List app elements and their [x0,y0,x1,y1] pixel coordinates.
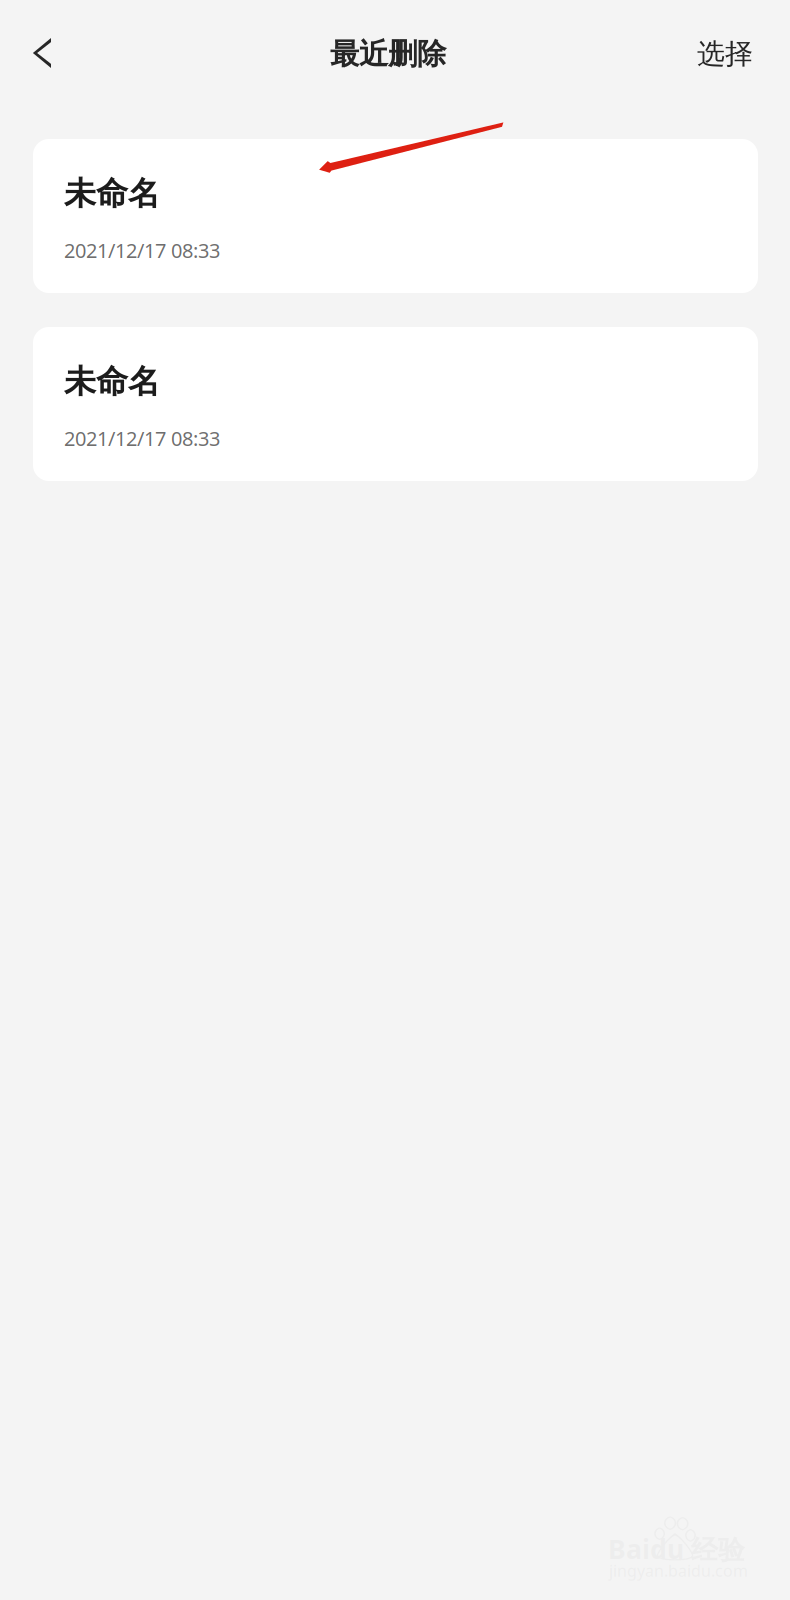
staticText: 2021/12/17 08:33 [64,237,220,264]
button[interactable]: 未命名 [33,139,758,293]
button[interactable]: Back [10,21,74,85]
staticText: 最近删除 [330,36,446,72]
staticText: 未命名 [64,174,160,213]
button[interactable]: 选择 [670,22,780,86]
staticText: 2021/12/17 08:33 [64,425,220,452]
button[interactable]: 未命名 [33,327,758,481]
staticText: 选择 [697,37,753,71]
staticText: 未命名 [64,362,160,401]
